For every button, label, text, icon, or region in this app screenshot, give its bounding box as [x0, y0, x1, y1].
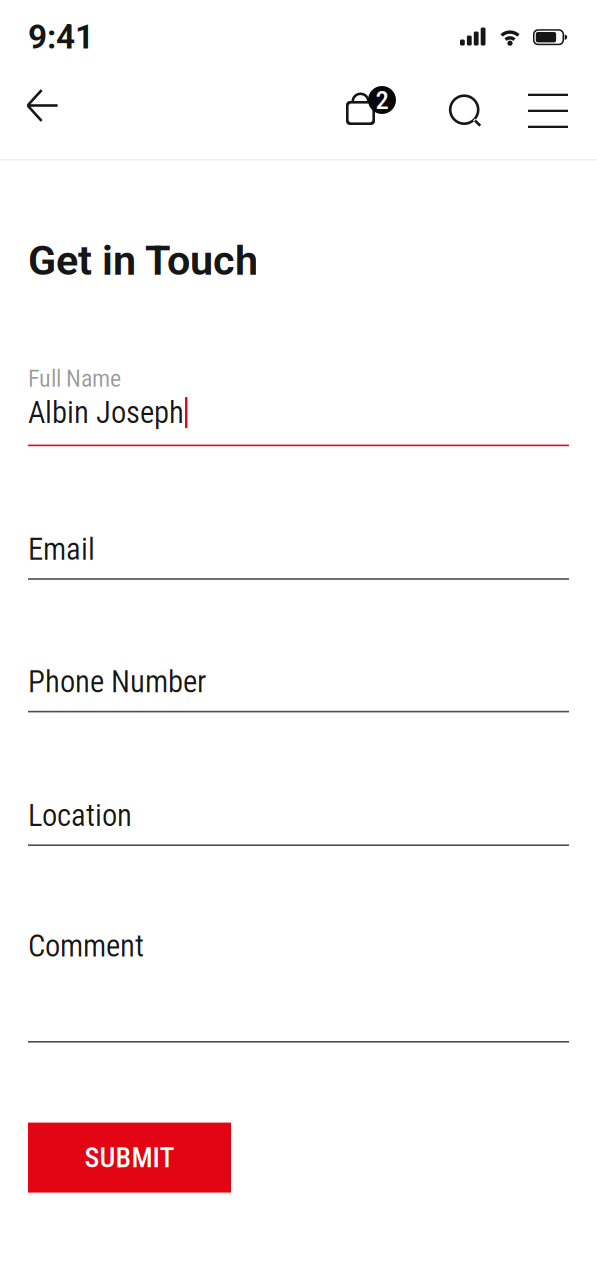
button[interactable]: Shopping bag, 2 items	[342, 86, 400, 132]
staticText: Phone Number	[28, 664, 206, 700]
staticText: Albin Joseph	[28, 395, 184, 430]
staticText: Comment	[28, 928, 144, 964]
staticText: Get in Touch	[28, 236, 258, 285]
staticText: 2	[375, 84, 388, 116]
button[interactable]: Location	[28, 798, 569, 846]
button[interactable]: SUBMIT	[28, 1123, 231, 1193]
staticText: SUBMIT	[84, 1141, 174, 1174]
button[interactable]: Phone Number	[28, 665, 569, 712]
button[interactable]: Full Name	[28, 356, 569, 446]
button[interactable]: Search	[400, 78, 506, 139]
button[interactable]: Email	[28, 532, 569, 580]
button[interactable]: Menu	[506, 78, 568, 139]
staticText: Location	[28, 797, 132, 833]
staticText: Full Name	[28, 364, 121, 393]
button[interactable]: Comment	[28, 929, 569, 1043]
staticText: 9:41	[28, 17, 94, 57]
button[interactable]: Back	[15, 78, 70, 140]
staticText: Email	[28, 531, 95, 567]
